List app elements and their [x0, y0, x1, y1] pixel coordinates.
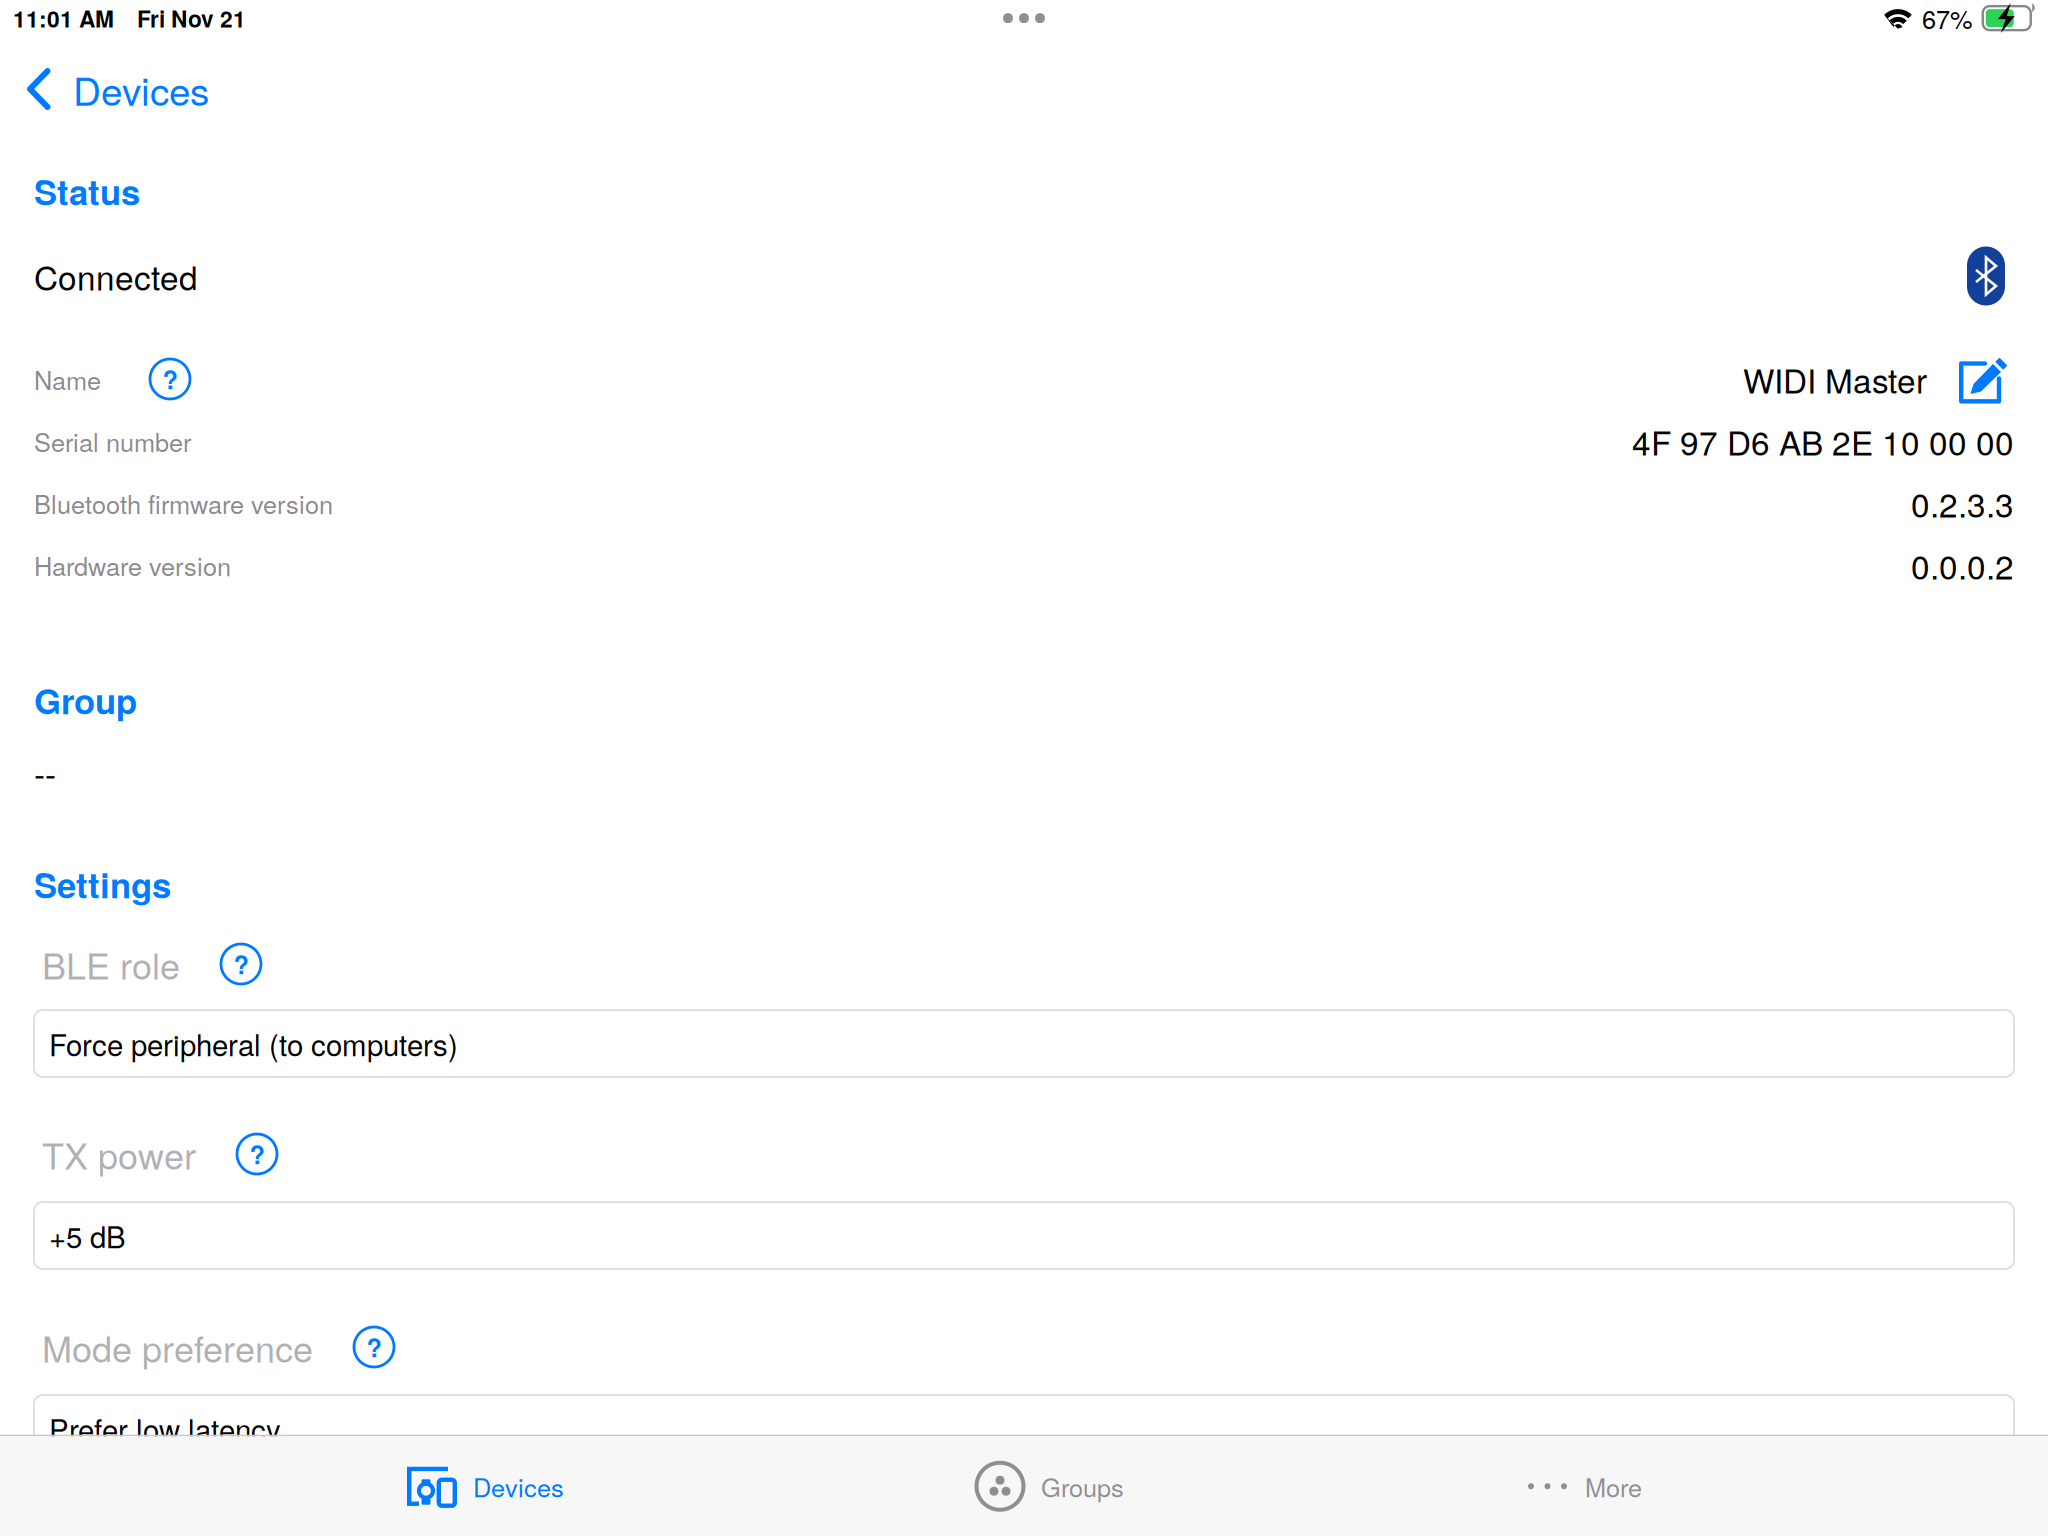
- staticText: 0.0.0.2: [1911, 541, 2014, 589]
- staticText: ?: [366, 1329, 381, 1365]
- button[interactable]: +5 dB: [34, 1202, 2014, 1269]
- staticText: ?: [162, 361, 177, 397]
- staticText: +5 dB: [49, 1214, 126, 1256]
- staticText: More: [1585, 1468, 1642, 1504]
- staticText: BLE role: [42, 938, 180, 990]
- staticText: TX power: [42, 1128, 196, 1180]
- staticText: Status: [34, 166, 140, 216]
- staticText: 11:01 AM: [13, 2, 114, 34]
- staticText: Devices: [473, 1468, 564, 1504]
- staticText: Devices: [73, 61, 209, 117]
- button[interactable]: Help: [221, 944, 261, 984]
- staticText: Bluetooth firmware version: [34, 485, 333, 521]
- button[interactable]: Devices: [407, 1437, 564, 1536]
- staticText: 0.2.3.3: [1911, 479, 2014, 527]
- staticText: Serial number: [34, 423, 191, 459]
- button[interactable]: Edit name: [1959, 354, 2014, 403]
- staticText: Fri Nov 21: [137, 2, 246, 34]
- staticText: Group: [34, 675, 137, 725]
- staticText: 4F 97 D6 AB 2E 10 00 00: [1632, 417, 2014, 465]
- button[interactable]: More: [1528, 1437, 1642, 1536]
- staticText: Connected: [34, 252, 198, 300]
- button[interactable]: Devices: [0, 50, 231, 128]
- staticText: Settings: [34, 859, 171, 909]
- staticText: --: [34, 748, 56, 796]
- staticText: Mode preference: [42, 1321, 313, 1373]
- staticText: ?: [233, 946, 248, 982]
- button[interactable]: Force peripheral (to computers): [34, 1010, 2014, 1077]
- staticText: Name: [34, 361, 101, 397]
- button[interactable]: Help: [237, 1134, 277, 1174]
- button[interactable]: Prefer low latency: [34, 1395, 2014, 1462]
- button[interactable]: Help: [354, 1327, 394, 1367]
- staticText: Prefer low latency: [49, 1407, 281, 1449]
- staticText: Hardware version: [34, 547, 231, 583]
- staticText: 67%: [1922, 0, 1973, 36]
- staticText: Groups: [1041, 1468, 1124, 1504]
- staticText: Force peripheral (to computers): [49, 1022, 458, 1064]
- button[interactable]: Groups: [976, 1437, 1124, 1536]
- staticText: ?: [249, 1136, 264, 1172]
- staticText: WIDI Master: [1743, 355, 1927, 403]
- button[interactable]: Help: [150, 359, 190, 399]
